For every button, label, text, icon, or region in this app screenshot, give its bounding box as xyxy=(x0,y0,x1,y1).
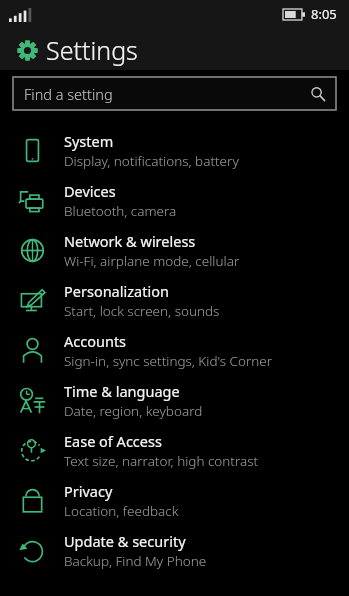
staticText: Time & language xyxy=(64,381,180,401)
button[interactable]: Personalization xyxy=(0,275,349,325)
staticText: Sign-in, sync settings, Kid's Corner xyxy=(64,352,273,370)
staticText: Display, notifications, battery xyxy=(64,152,239,170)
button[interactable]: Privacy xyxy=(0,475,349,525)
staticText: Settings xyxy=(46,33,138,67)
staticText: Accounts xyxy=(64,331,127,351)
staticText: Backup, Find My Phone xyxy=(64,552,207,570)
button[interactable]: Accounts xyxy=(0,325,349,375)
staticText: Date, region, keyboard xyxy=(64,402,203,420)
staticText: Wi-Fi, airplane mode, cellular xyxy=(64,252,240,270)
button[interactable]: Update & security xyxy=(0,525,349,575)
staticText: Privacy xyxy=(64,481,113,501)
button[interactable]: Devices xyxy=(0,175,349,225)
staticText: Devices xyxy=(64,181,116,201)
staticText: Bluetooth, camera xyxy=(64,202,177,220)
staticText: Text size, narrator, high contrast xyxy=(64,452,259,470)
staticText: 8:05 xyxy=(311,5,337,23)
button[interactable]: Ease of Access xyxy=(0,425,349,475)
staticText: Personalization xyxy=(64,281,169,301)
button[interactable]: System xyxy=(0,125,349,175)
staticText: Ease of Access xyxy=(64,431,162,451)
staticText: Find a setting xyxy=(24,84,113,104)
button[interactable]: Time & language xyxy=(0,375,349,425)
staticText: System xyxy=(64,131,114,151)
staticText: Location, feedback xyxy=(64,502,179,520)
button[interactable]: Find a setting xyxy=(13,77,336,110)
button[interactable]: Network & wireless xyxy=(0,225,349,275)
staticText: Network & wireless xyxy=(64,231,196,251)
staticText: Update & security xyxy=(64,531,186,551)
staticText: Start, lock screen, sounds xyxy=(64,302,220,320)
